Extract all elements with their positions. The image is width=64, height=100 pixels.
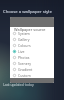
staticText: Photos (18, 55, 30, 60)
button[interactable]: Custom (10, 72, 54, 78)
staticText: Gallery (18, 37, 30, 42)
staticText: Last updated today (3, 82, 34, 87)
staticText: System (18, 31, 30, 36)
button[interactable]: Photos (10, 54, 54, 60)
button[interactable]: System (10, 30, 54, 36)
button[interactable]: Gallery (10, 36, 54, 42)
staticText: Choose a wallpaper style (3, 9, 52, 15)
staticText: Colours (18, 43, 31, 48)
staticText: Custom (18, 73, 31, 78)
staticText: Scenery (18, 61, 31, 66)
button[interactable]: Scenery (10, 60, 54, 66)
staticText: Live (18, 49, 25, 54)
staticText: Gradient (18, 67, 33, 72)
button[interactable]: Colours (10, 42, 54, 48)
button[interactable]: Live (10, 48, 54, 54)
staticText: Wallpaper source (14, 27, 46, 32)
button[interactable]: Gradient (10, 66, 54, 72)
